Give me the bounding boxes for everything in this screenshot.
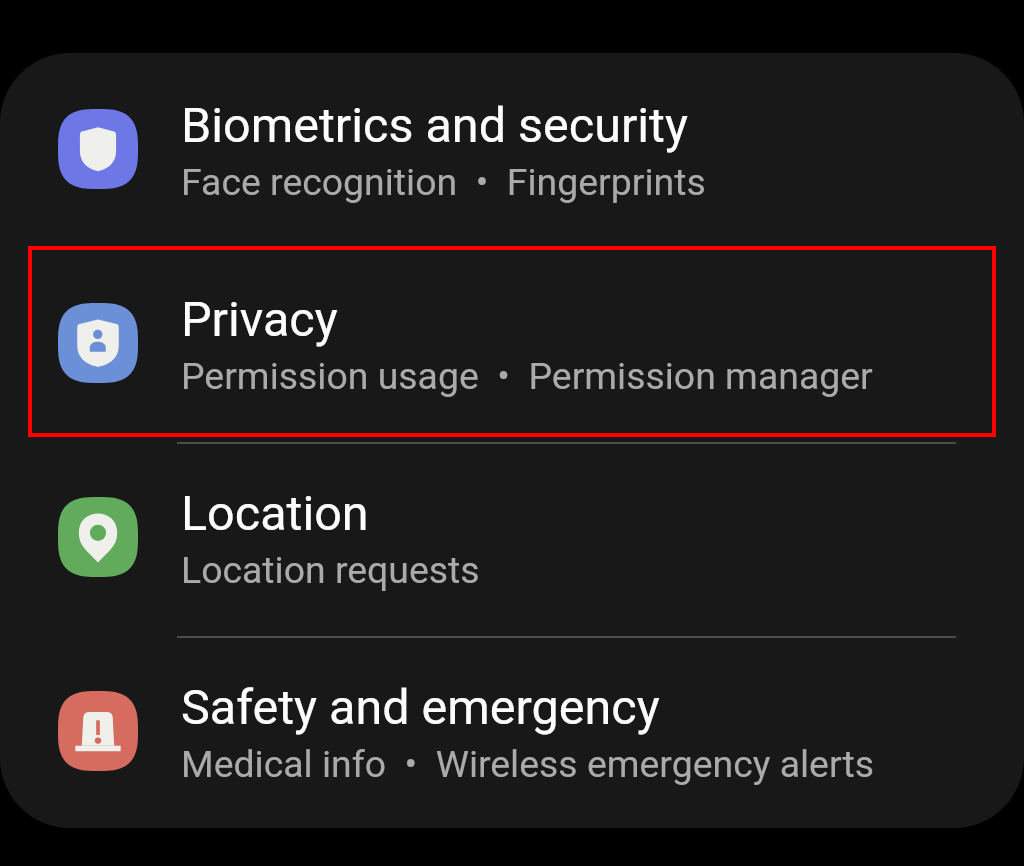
staticText: Face recognition • Fingerprints xyxy=(181,154,706,206)
staticText: Medical info • Wireless emergency alerts xyxy=(181,736,875,788)
staticText: Privacy xyxy=(181,290,338,348)
button[interactable]: Biometrics and security xyxy=(0,53,1024,246)
button[interactable]: Safety and emergency xyxy=(0,634,1024,827)
staticText: Biometrics and security xyxy=(181,96,688,154)
other: Privacy xyxy=(0,303,181,383)
button[interactable]: Location xyxy=(0,440,1024,634)
button[interactable]: Privacy xyxy=(0,246,1024,440)
other: Biometrics and security xyxy=(0,109,181,189)
staticText: Permission usage • Permission manager xyxy=(181,348,873,400)
other: Safety and emergency xyxy=(0,691,181,771)
other: Location xyxy=(0,497,181,577)
staticText: Safety and emergency xyxy=(181,678,660,736)
staticText: Location xyxy=(181,484,369,542)
staticText: Location requests xyxy=(181,542,480,594)
